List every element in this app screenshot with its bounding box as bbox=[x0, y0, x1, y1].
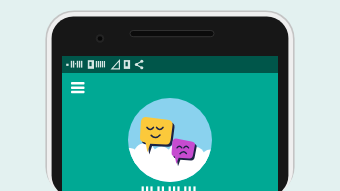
button[interactable]: Mood illustration bbox=[128, 98, 212, 182]
button[interactable]: Open navigation drawer bbox=[66, 78, 92, 102]
